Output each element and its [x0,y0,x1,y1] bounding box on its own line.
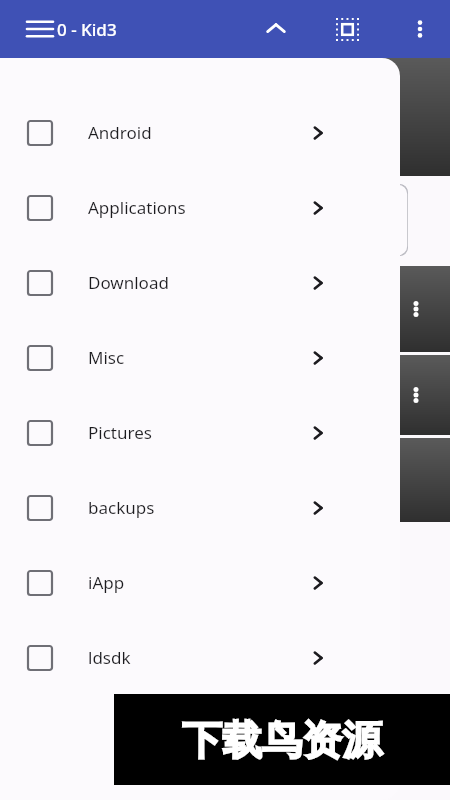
button[interactable]: backups [0,470,400,545]
staticText: ldsdk [88,646,131,669]
button[interactable]: Applications [0,170,400,245]
button[interactable]: iApp [0,545,400,620]
button[interactable]: Misc [0,320,400,395]
staticText: Misc [88,346,125,369]
staticText: Pictures [88,421,152,444]
staticText: 0 - Kid3 [57,18,117,41]
staticText: Android [88,121,152,144]
staticText: Download [88,271,169,294]
button[interactable]: ldsdk [0,620,400,695]
button[interactable]: Pictures [0,395,400,470]
button[interactable]: Download [0,245,400,320]
button[interactable]: Android [0,95,400,170]
button[interactable]: Select all [323,5,371,53]
staticText: Applications [88,196,186,219]
staticText: backups [88,496,155,519]
button[interactable]: Open navigation menu [18,7,62,51]
button[interactable]: More options [396,5,444,53]
staticText: 下载鸟资源 [182,715,382,765]
staticText: iApp [88,571,125,594]
button[interactable]: Go up [252,5,300,53]
